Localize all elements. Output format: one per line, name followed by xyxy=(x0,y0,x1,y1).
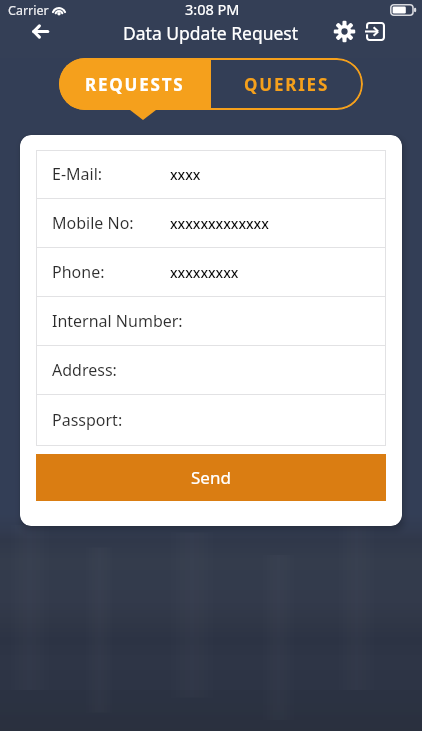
staticText: xxxxxxxxxxxxx xyxy=(170,214,269,233)
button[interactable]: QUERIES xyxy=(211,58,363,110)
staticText: 3:08 PM xyxy=(185,0,240,19)
staticText: Passport: xyxy=(52,409,123,431)
staticText: Address: xyxy=(52,359,117,381)
staticText: Internal Number: xyxy=(52,310,183,332)
staticText: Mobile No: xyxy=(52,212,134,234)
button[interactable]: Passport: xyxy=(36,395,386,444)
staticText: xxxx xyxy=(170,165,201,184)
button[interactable]: REQUESTS xyxy=(59,58,211,110)
button[interactable]: Mobile No: xyxy=(36,199,386,247)
staticText: Data Update Request xyxy=(123,21,299,45)
staticText: Phone: xyxy=(52,261,105,283)
button[interactable]: E-Mail: xyxy=(36,150,386,198)
staticText: E-Mail: xyxy=(52,163,103,185)
button[interactable]: Log out xyxy=(360,16,391,46)
button[interactable]: Settings xyxy=(329,16,360,46)
button[interactable]: Phone: xyxy=(36,248,386,296)
button[interactable]: Send xyxy=(36,454,386,501)
staticText: QUERIES xyxy=(244,73,330,96)
staticText: Send xyxy=(191,466,231,489)
staticText: xxxxxxxxx xyxy=(170,263,239,282)
button[interactable]: Address: xyxy=(36,346,386,394)
button[interactable]: Back xyxy=(32,16,68,46)
staticText: REQUESTS xyxy=(85,73,185,96)
staticText: Carrier xyxy=(8,2,49,19)
button[interactable]: Internal Number: xyxy=(36,297,386,345)
